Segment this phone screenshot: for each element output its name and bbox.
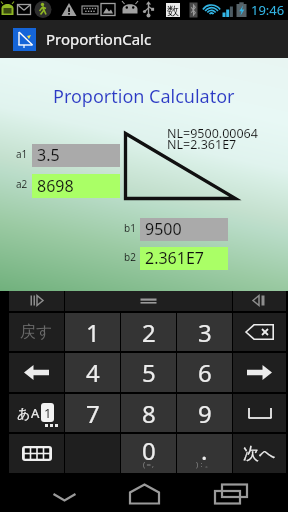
- button[interactable]: 5: [121, 353, 176, 392]
- button[interactable]: Delete: [233, 313, 286, 351]
- button[interactable]: a2 value 8698: [32, 174, 120, 198]
- staticText: 2: [142, 316, 156, 349]
- staticText: 3: [198, 316, 212, 349]
- staticText: あ: [17, 405, 31, 421]
- staticText: 8698: [37, 175, 74, 197]
- button[interactable]: Previous candidate: [9, 291, 64, 311]
- button[interactable]: Undo: [9, 313, 64, 351]
- button[interactable]: 9: [177, 394, 232, 432]
- staticText: a1: [16, 147, 28, 161]
- staticText: (＝,: [143, 460, 154, 470]
- staticText: 戻す: [20, 322, 53, 342]
- button[interactable]: a1 value 3.5: [32, 144, 120, 167]
- button[interactable]: b2 value 2.361E7: [140, 247, 228, 270]
- staticText: ProportionCalc: [46, 29, 152, 49]
- staticText: a2: [16, 177, 28, 191]
- staticText: 8: [142, 397, 156, 430]
- button[interactable]: Home: [96, 473, 192, 512]
- button[interactable]: ProportionCalc app icon: [13, 28, 36, 51]
- staticText: NL=2.361E7: [167, 136, 237, 153]
- button[interactable]: Hide keyboard: [233, 291, 286, 311]
- staticText: 9500: [145, 218, 182, 240]
- button[interactable]: b1 value 9500: [140, 218, 228, 241]
- staticText: A: [31, 404, 40, 422]
- button[interactable]: 2: [121, 313, 176, 351]
- button[interactable]: 4: [65, 353, 120, 392]
- staticText: 9: [198, 397, 212, 430]
- button[interactable]: .: [177, 434, 232, 473]
- staticText: 次へ: [243, 444, 276, 464]
- staticText: 5: [142, 356, 156, 389]
- staticText: NL=9500.00064: [167, 125, 258, 142]
- button[interactable]: Back: [0, 473, 96, 512]
- staticText: 7: [86, 397, 100, 430]
- button[interactable]: 6: [177, 353, 232, 392]
- staticText: .: [201, 434, 208, 467]
- staticText: 6: [198, 356, 212, 389]
- button[interactable]: Switch input mode: [9, 394, 64, 432]
- button[interactable]: 0: [121, 434, 176, 473]
- staticText: 3.5: [37, 144, 60, 166]
- staticText: 1: [44, 404, 52, 422]
- staticText: b1: [124, 221, 136, 235]
- button[interactable]: 1: [65, 313, 120, 351]
- staticText: 1: [86, 316, 100, 349]
- staticText: 0: [142, 434, 156, 467]
- staticText: 2.361E7: [145, 247, 204, 269]
- button[interactable]: 3: [177, 313, 232, 351]
- button[interactable]: Move cursor right: [233, 353, 286, 392]
- button[interactable]: Next: [233, 434, 286, 473]
- staticText: Proportion Calculator: [53, 84, 235, 109]
- button[interactable]: Move cursor left: [9, 353, 64, 392]
- staticText: 数: [167, 3, 179, 17]
- staticText: b2: [124, 250, 136, 264]
- staticText: 4: [86, 356, 100, 389]
- button[interactable]: Candidate list: [65, 291, 232, 311]
- button[interactable]: Keyboard settings: [9, 434, 64, 473]
- button[interactable]: 8: [121, 394, 176, 432]
- staticText: )：。: [196, 460, 213, 470]
- button[interactable]: Recent apps: [192, 473, 288, 512]
- staticText: 19:46: [251, 1, 285, 19]
- button[interactable]: Space: [233, 394, 286, 432]
- button[interactable]: 7: [65, 394, 120, 432]
